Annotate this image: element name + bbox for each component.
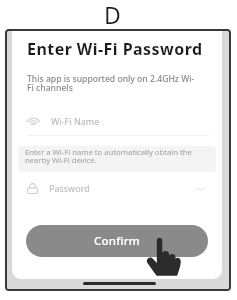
- staticText: D: [104, 0, 121, 30]
- staticText: Wi-Fi Name: [51, 115, 100, 127]
- staticText: Password: [49, 182, 90, 194]
- button[interactable]: Password: [20, 177, 216, 199]
- staticText: Enter a Wi-Fi name to automatically obta…: [25, 147, 192, 166]
- button[interactable]: Confirm: [26, 225, 208, 257]
- button[interactable]: Wi-Fi Name: [20, 110, 216, 132]
- staticText: This app is supported only on 2.4GHz Wi-…: [27, 73, 195, 94]
- staticText: Confirm: [94, 233, 140, 249]
- other: Show password: [196, 186, 205, 191]
- staticText: Enter Wi-Fi Password: [27, 38, 203, 60]
